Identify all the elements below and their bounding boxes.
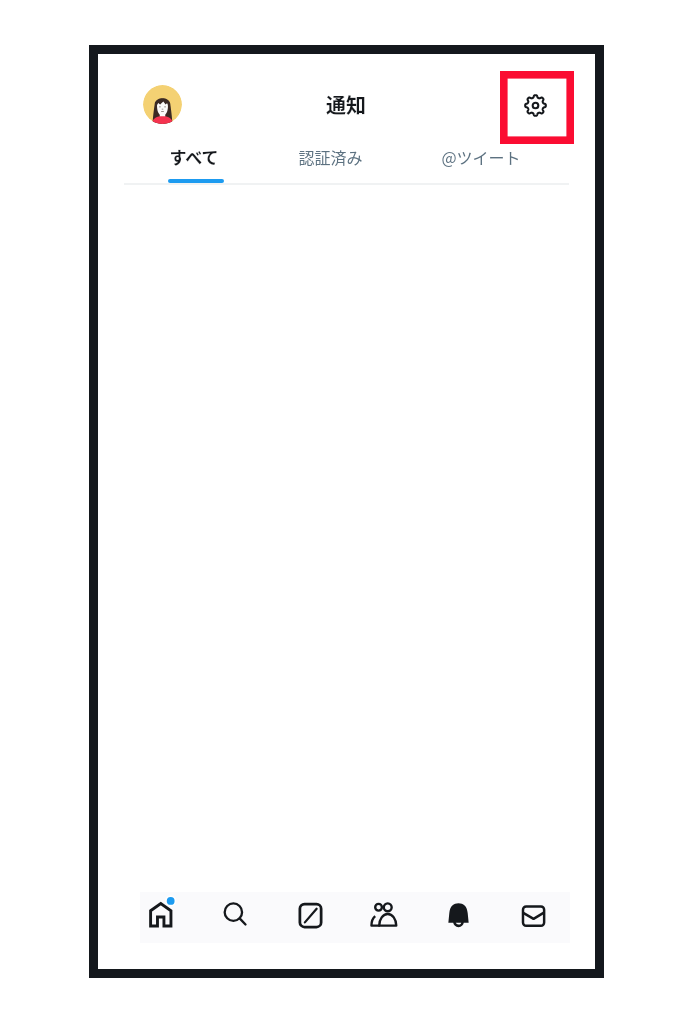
button[interactable]: 認証済み: [263, 134, 397, 178]
button[interactable]: Notifications: [434, 890, 482, 938]
button[interactable]: Search: [211, 890, 259, 938]
staticText: すべて: [169, 144, 219, 169]
button[interactable]: @ツイート: [414, 134, 548, 178]
button[interactable]: Profile: [143, 85, 182, 124]
button[interactable]: Home: [136, 890, 184, 938]
button[interactable]: Communities: [360, 890, 408, 938]
button[interactable]: Settings: [500, 71, 574, 144]
button[interactable]: すべて: [127, 134, 261, 178]
staticText: 通知: [326, 90, 366, 119]
staticText: 認証済み: [298, 145, 363, 168]
staticText: @ツイート: [441, 145, 521, 168]
button[interactable]: Compose: [285, 890, 333, 938]
button[interactable]: Messages: [509, 890, 557, 938]
